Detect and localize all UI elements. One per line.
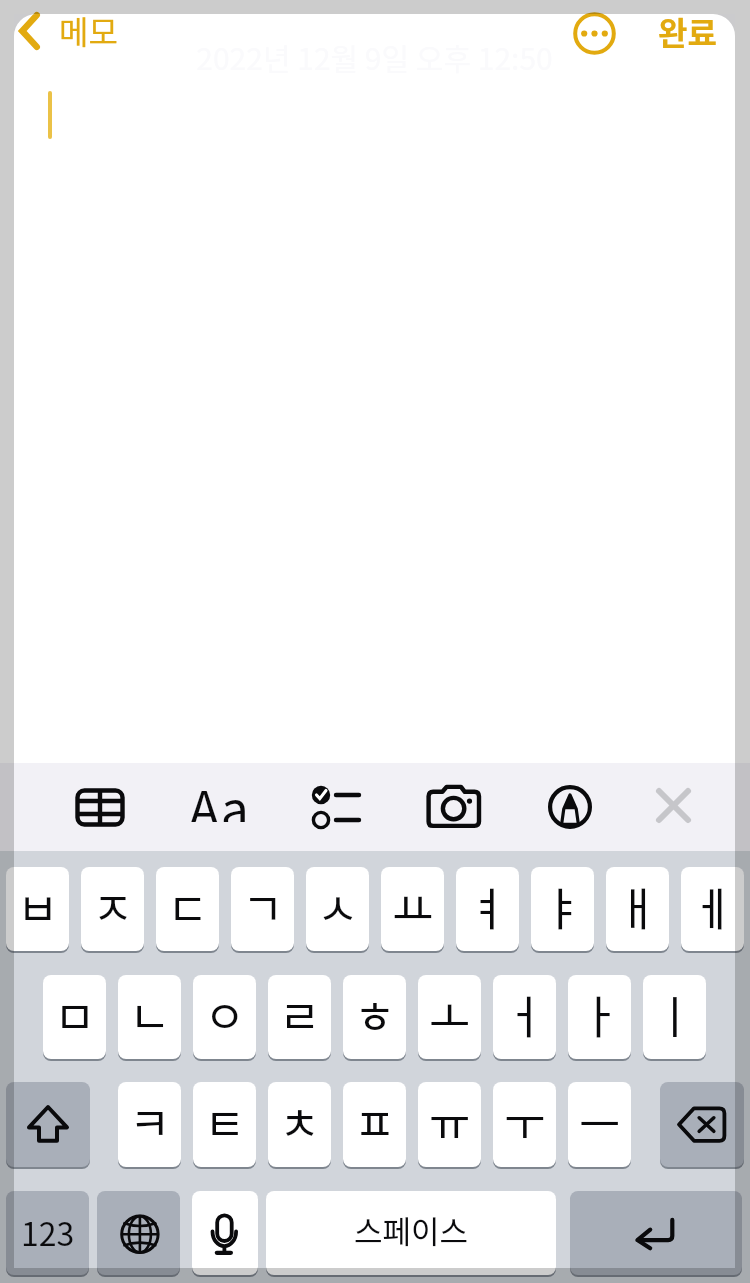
button[interactable]: More options <box>571 10 618 57</box>
staticText: ㄷ <box>167 874 209 939</box>
button[interactable]: 스페이스 <box>266 1191 556 1275</box>
staticText: ㅡ <box>579 1089 621 1154</box>
button[interactable]: ㅗ <box>418 975 481 1059</box>
staticText: 스페이스 <box>354 1207 469 1252</box>
button[interactable]: ㅍ <box>343 1082 406 1167</box>
staticText: ㅅ <box>317 874 359 939</box>
button[interactable]: ㅅ <box>306 867 369 951</box>
staticText: ㅣ <box>654 982 696 1047</box>
button[interactable]: ㅇ <box>193 975 256 1059</box>
button[interactable]: ㄹ <box>268 975 331 1059</box>
staticText: ㅌ <box>204 1089 246 1154</box>
staticText: ㅇ <box>204 982 246 1047</box>
button[interactable]: 메모 <box>12 6 126 54</box>
button[interactable]: ㅂ <box>6 867 69 951</box>
staticText: ㅊ <box>279 1089 321 1154</box>
button[interactable]: ㅈ <box>81 867 144 951</box>
button[interactable]: Insert table <box>75 788 125 827</box>
button[interactable]: ㅡ <box>568 1082 631 1167</box>
button[interactable]: ㄷ <box>156 867 219 951</box>
button[interactable]: Backspace <box>660 1082 744 1167</box>
staticText: ㅁ <box>54 982 96 1047</box>
staticText: ㅐ <box>617 874 659 939</box>
button[interactable]: ㅌ <box>193 1082 256 1167</box>
button[interactable]: ㄱ <box>231 867 294 951</box>
staticText: ㅏ <box>579 982 621 1047</box>
button[interactable]: 123 <box>6 1191 89 1275</box>
staticText: ㅕ <box>467 874 509 939</box>
button[interactable]: ㅎ <box>343 975 406 1059</box>
button[interactable]: Aa <box>178 770 260 822</box>
staticText: ㅍ <box>354 1089 396 1154</box>
staticText: 123 <box>21 1209 75 1255</box>
staticText: ㅜ <box>504 1089 546 1154</box>
button[interactable]: ㅛ <box>381 867 444 951</box>
staticText: 2022년 12월 9일 오후 12:50 <box>14 35 735 78</box>
button[interactable]: ㅠ <box>418 1082 481 1167</box>
button[interactable]: ㅔ <box>681 867 744 951</box>
staticText: ㄴ <box>129 982 171 1047</box>
staticText: ㅓ <box>504 982 546 1047</box>
staticText: 완료 <box>658 8 717 54</box>
button[interactable]: ㅓ <box>493 975 556 1059</box>
button[interactable]: ㅊ <box>268 1082 331 1167</box>
staticText: ㅠ <box>429 1089 471 1154</box>
staticText: ㄱ <box>242 874 284 939</box>
button[interactable]: Checklist <box>308 784 360 830</box>
button[interactable]: Return <box>570 1191 742 1275</box>
staticText: ㅋ <box>129 1089 171 1154</box>
button[interactable]: Markup <box>548 785 592 829</box>
staticText: ㅔ <box>692 874 734 939</box>
staticText: ㅂ <box>17 874 59 939</box>
staticText: Aa <box>189 770 249 822</box>
staticText: ㅎ <box>354 982 396 1047</box>
button[interactable]: ㅏ <box>568 975 631 1059</box>
button[interactable]: Camera <box>425 783 483 829</box>
button[interactable]: Switch keyboard <box>97 1191 180 1275</box>
staticText: ㅑ <box>542 874 584 939</box>
button[interactable]: Shift <box>6 1082 90 1167</box>
staticText: 메모 <box>59 7 118 53</box>
button[interactable]: Dictation <box>192 1191 258 1275</box>
button[interactable]: ㅣ <box>643 975 706 1059</box>
button[interactable]: Hide keyboard <box>657 789 690 822</box>
button[interactable]: ㅑ <box>531 867 594 951</box>
button[interactable]: ㅜ <box>493 1082 556 1167</box>
staticText: ㅗ <box>429 982 471 1047</box>
staticText: ㅛ <box>392 874 434 939</box>
button[interactable]: ㅐ <box>606 867 669 951</box>
button[interactable]: ㅋ <box>118 1082 181 1167</box>
staticText: ㅈ <box>92 874 134 939</box>
button[interactable]: 완료 <box>650 7 725 55</box>
staticText: ㄹ <box>279 982 321 1047</box>
button[interactable]: ㄴ <box>118 975 181 1059</box>
button[interactable]: ㅕ <box>456 867 519 951</box>
button[interactable]: ㅁ <box>43 975 106 1059</box>
